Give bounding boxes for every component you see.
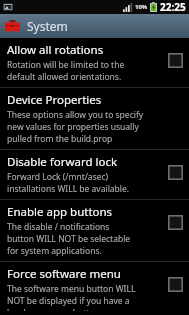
staticText: button WILL NOT be selectable [7, 233, 131, 245]
staticText: pulled from the build.prop [7, 133, 113, 145]
button[interactable]: Toggle Enable app buttons [167, 214, 184, 231]
staticText: System [27, 18, 68, 34]
staticText: Forward Lock (/mnt/asec) [7, 171, 109, 183]
other: App icon [4, 19, 21, 34]
staticText: Enable app buttons [7, 204, 113, 220]
button[interactable]: Disable forward lock [0, 150, 189, 199]
staticText: Allow all rotations [7, 42, 104, 58]
staticText: Force software menu [7, 266, 121, 282]
staticText: The software menu button WILL [7, 283, 136, 295]
staticText: NOT be displayed if you have a [7, 295, 130, 307]
staticText: Rotation will be limited to the [7, 59, 125, 71]
button[interactable]: App icon [0, 14, 189, 38]
button[interactable]: Allow all rotations [0, 38, 189, 87]
button[interactable]: Toggle Disable forward lock [167, 164, 184, 181]
staticText: installations WILL be available. [7, 183, 130, 195]
staticText: for system applications. [7, 245, 102, 257]
button[interactable]: Force software menu [0, 262, 189, 315]
staticText: The disable / notifications [7, 221, 110, 233]
staticText: 22:25 [160, 0, 186, 14]
button[interactable]: Enable app buttons [0, 200, 189, 261]
button[interactable]: Device Properties [0, 88, 189, 149]
button[interactable]: Toggle Allow all rotations [167, 52, 184, 69]
staticText: These options allow you to specify [7, 109, 144, 121]
staticText: hardware menu button. [7, 307, 103, 311]
staticText: Device Properties [7, 92, 102, 108]
staticText: 10% [135, 3, 148, 11]
staticText: default allowed orientations. [7, 71, 122, 83]
staticText: new values for properties usually [7, 121, 139, 133]
staticText: Disable forward lock [7, 154, 118, 170]
button[interactable]: Toggle Force software menu [167, 276, 184, 293]
